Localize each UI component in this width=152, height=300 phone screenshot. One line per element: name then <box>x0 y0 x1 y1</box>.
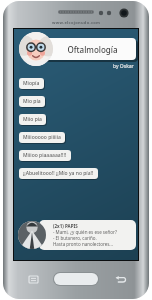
button[interactable]: Back <box>113 272 127 286</box>
button[interactable]: Miopía <box>19 78 44 89</box>
button[interactable]: Menu <box>27 273 39 285</box>
button[interactable]: Miio pia <box>19 114 46 125</box>
button[interactable]: Home <box>54 273 98 285</box>
staticText: Miopía <box>24 81 41 88</box>
staticText: Miiioo piaaaaaa!!!! <box>24 153 67 160</box>
staticText: Miio pia <box>24 117 43 124</box>
staticText: - Mami, ¿y quién es ese señor? <box>53 229 117 235</box>
staticText: ¡¡Abuelitooo!! ¡¡Mío ya no pía!! <box>24 171 94 178</box>
staticText: by Oskar <box>113 63 134 70</box>
staticText: Miio pia <box>23 116 42 123</box>
staticText: Mio pía <box>23 98 41 105</box>
staticText: www.elcojonudo.com <box>52 20 101 25</box>
button[interactable]: ¡¡Abuelitooo!! ¡¡Mío ya no pía!! <box>19 168 98 179</box>
staticText: - El butanero, cariño. <box>53 235 97 241</box>
staticText: Mio pía <box>24 99 42 106</box>
staticText: Miiioo piaaaaaa!!!! <box>23 152 67 159</box>
staticText: Miiiooooo piiiiia <box>24 135 62 142</box>
button[interactable]: Miiioo piaaaaaa!!!! <box>19 150 71 161</box>
staticText: ¡¡Abuelitooo!! ¡¡Mío ya no pía!! <box>23 170 94 177</box>
staticText: (2x1) PAPIS <box>53 223 78 229</box>
staticText: Hasta pronto nanolectores... <box>53 241 113 247</box>
staticText: Miopía <box>23 80 40 87</box>
button[interactable]: Oftalmología <box>36 38 136 60</box>
button[interactable]: Mio pía <box>19 96 45 107</box>
button[interactable]: (2x1) PAPIS <box>39 220 136 250</box>
staticText: Oftalmología <box>67 44 118 55</box>
button[interactable]: Miiiooooo piiiiia <box>19 132 65 143</box>
staticText: Miiiooooo piiiiia <box>23 134 61 141</box>
